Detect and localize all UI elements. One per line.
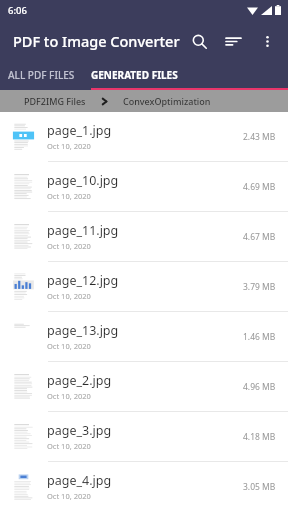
- button[interactable]: page_3.jpg: [0, 412, 288, 461]
- button[interactable]: page_12.jpg: [0, 262, 288, 311]
- staticText: 2.43 MB: [243, 131, 276, 143]
- button[interactable]: page_2.jpg: [0, 362, 288, 411]
- staticText: page_11.jpg: [47, 222, 119, 239]
- staticText: Oct 10, 2020: [47, 441, 91, 451]
- staticText: ALL PDF FILES: [8, 68, 75, 82]
- button[interactable]: Search: [182, 24, 216, 58]
- staticText: page_10.jpg: [47, 172, 119, 189]
- staticText: Oct 10, 2020: [47, 341, 91, 351]
- staticText: Oct 10, 2020: [47, 141, 91, 151]
- staticText: 4.18 MB: [243, 431, 276, 443]
- staticText: Oct 10, 2020: [47, 241, 91, 251]
- staticText: 1.46 MB: [243, 331, 276, 343]
- button[interactable]: page_4.jpg: [0, 462, 288, 511]
- staticText: 4.69 MB: [243, 181, 276, 193]
- staticText: PDF2IMG Files: [24, 95, 86, 107]
- staticText: page_1.jpg: [47, 122, 112, 139]
- button[interactable]: Sort: [216, 24, 250, 58]
- staticText: Oct 10, 2020: [47, 391, 91, 401]
- staticText: page_12.jpg: [47, 272, 119, 289]
- button[interactable]: ConvexOptimization: [123, 95, 211, 107]
- staticText: PDF to Image Converter: [13, 31, 180, 51]
- staticText: Oct 10, 2020: [47, 291, 91, 301]
- button[interactable]: page_11.jpg: [0, 212, 288, 261]
- button[interactable]: PDF2IMG Files: [24, 95, 86, 107]
- button[interactable]: GENERATED FILES: [91, 62, 288, 90]
- staticText: 3.79 MB: [243, 281, 276, 293]
- staticText: Oct 10, 2020: [47, 191, 91, 201]
- staticText: page_13.jpg: [47, 322, 119, 339]
- staticText: page_3.jpg: [47, 422, 112, 439]
- staticText: ConvexOptimization: [123, 95, 211, 107]
- staticText: 3.05 MB: [243, 481, 276, 493]
- staticText: 6:06: [8, 4, 27, 17]
- staticText: Oct 10, 2020: [47, 491, 91, 501]
- staticText: 4.96 MB: [243, 381, 276, 393]
- button[interactable]: ALL PDF FILES: [8, 62, 75, 90]
- button[interactable]: page_13.jpg: [0, 312, 288, 361]
- staticText: page_2.jpg: [47, 372, 112, 389]
- button[interactable]: page_1.jpg: [0, 112, 288, 161]
- staticText: GENERATED FILES: [91, 68, 178, 82]
- button[interactable]: More options: [250, 24, 284, 58]
- staticText: 4.67 MB: [243, 231, 276, 243]
- staticText: page_4.jpg: [47, 472, 112, 489]
- button[interactable]: page_10.jpg: [0, 162, 288, 211]
